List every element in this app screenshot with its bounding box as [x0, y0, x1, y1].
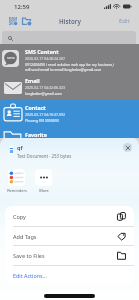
- button[interactable]: New folder: [22, 17, 31, 25]
- button[interactable]: Reminders: [6, 169, 27, 193]
- staticText: 2020-02-17 04:32:06.323: [25, 85, 66, 90]
- button[interactable]: Edit Actions...: [13, 266, 126, 284]
- staticText: Contact: [25, 104, 46, 111]
- staticText: will send email to email longbalan@gmail…: [25, 67, 102, 72]
- button[interactable]: Email: [0, 73, 139, 100]
- staticText: Add Tags: [13, 233, 37, 240]
- button[interactable]: More: [33, 169, 54, 193]
- staticText: Text Document · 253 bytes: [17, 153, 72, 159]
- staticText: 12:59: [14, 3, 30, 11]
- staticText: Edit Actions...: [13, 272, 47, 279]
- staticText: longbalan@gmail.com: [25, 91, 62, 96]
- button[interactable]: Save to Files: [13, 246, 126, 265]
- staticText: Reminders: [7, 188, 27, 193]
- button[interactable]: Scan QR: [9, 17, 17, 25]
- staticText: sms: [7, 55, 15, 60]
- button[interactable]: sms: [0, 44, 139, 72]
- staticText: History: [59, 17, 81, 25]
- button[interactable]: Add Tags: [13, 227, 126, 245]
- staticText: qf: [17, 144, 23, 152]
- button[interactable]: Contact: [0, 100, 139, 127]
- button[interactable]: Close: [123, 143, 132, 152]
- staticText: Email: [25, 77, 40, 84]
- button[interactable]: Favorite: [0, 127, 139, 145]
- button[interactable]: [2, 31, 136, 45]
- staticText: 0912404490 i need solution web app for m…: [25, 62, 114, 67]
- staticText: Save to Files: [13, 252, 45, 259]
- staticText: Copy: [13, 213, 26, 220]
- staticText: SMS Content: [25, 48, 59, 55]
- staticText: Favorite: [25, 131, 47, 138]
- button[interactable]: Copy: [13, 206, 126, 226]
- button[interactable]: Edit: [119, 17, 130, 25]
- staticText: More: [39, 188, 49, 193]
- staticText: 2020-02-17 04:38:24.207: [25, 56, 66, 61]
- staticText: Phuong 0912050693: [25, 118, 59, 123]
- staticText: 2020-02-17 04:10:37.092: [25, 112, 66, 117]
